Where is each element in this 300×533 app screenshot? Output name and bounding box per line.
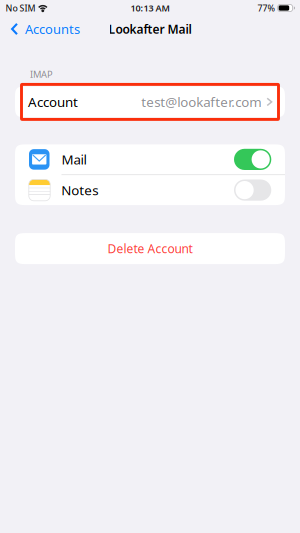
staticText: 77% [257, 2, 274, 14]
staticText: IMAP [30, 68, 53, 80]
staticText: test@lookafter.com [141, 93, 261, 111]
staticText: 10:13 AM [130, 2, 169, 14]
staticText: Lookafter Mail [108, 21, 191, 37]
staticText: Mail [61, 150, 86, 168]
button[interactable]: Notes [15, 175, 285, 205]
button[interactable]: Account [15, 86, 285, 117]
button[interactable]: Mail [15, 144, 285, 174]
button[interactable]: Delete Account [15, 233, 285, 264]
staticText: No SIM [5, 2, 35, 14]
button[interactable]: Accounts [0, 16, 88, 42]
staticText: Account [28, 93, 78, 111]
staticText: Notes [61, 181, 98, 199]
staticText: Accounts [25, 20, 80, 38]
staticText: Delete Account [107, 241, 192, 256]
